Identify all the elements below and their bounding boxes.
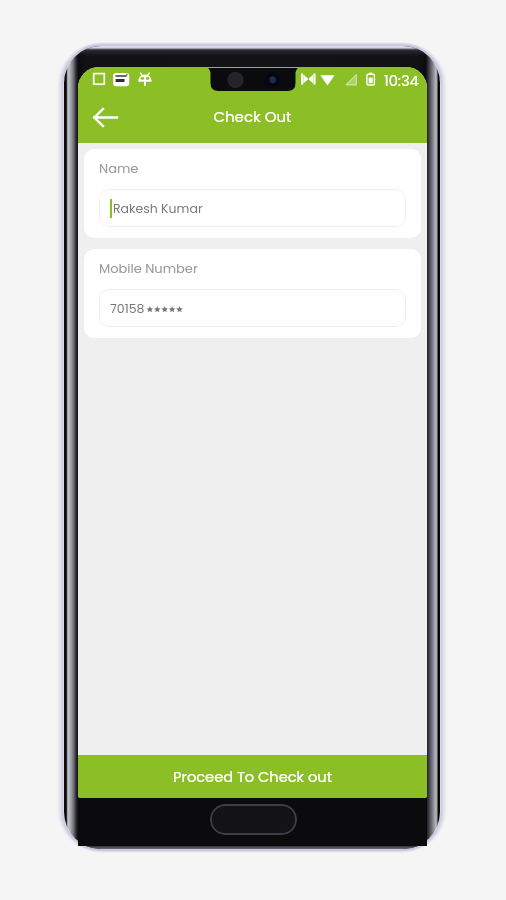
staticText: 70158 [110,300,145,317]
staticText: Rakesh Kumar [113,200,203,217]
staticText: Name [99,159,139,177]
staticText: Check Out [213,106,292,127]
button[interactable]: Back [84,96,126,138]
button[interactable]: Mobile Number [84,249,421,338]
button[interactable]: Proceed To Check out [78,755,427,798]
button[interactable]: Name [84,149,421,238]
staticText: 10:34 [384,71,419,91]
staticText: Mobile Number [99,259,198,277]
staticText: Proceed To Check out [173,767,332,787]
